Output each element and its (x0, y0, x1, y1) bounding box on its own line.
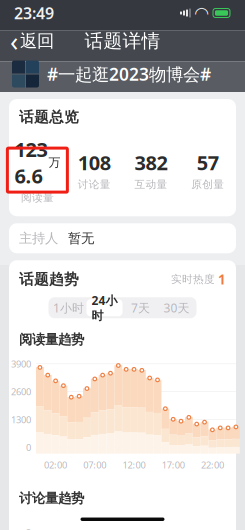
button[interactable]: 30天 (158, 299, 194, 316)
button[interactable]: ‹ (0, 26, 64, 56)
staticText: 原创量 (191, 178, 224, 191)
staticText: 23:49 (14, 2, 54, 24)
staticText: 7天 (131, 300, 150, 316)
staticText: 实时热度 (171, 273, 215, 286)
staticText: 22:00 (201, 459, 224, 471)
staticText: 382 (134, 149, 167, 176)
staticText: 1236.6 (14, 136, 47, 189)
staticText: 返回 (20, 30, 54, 52)
staticText: ◠ (195, 3, 208, 23)
staticText: 暂无 (68, 230, 94, 246)
staticText: 互动量 (134, 178, 167, 191)
staticText: 07:00 (83, 459, 106, 471)
button[interactable]: 7天 (122, 299, 158, 316)
staticText: 1300 (11, 413, 31, 426)
staticText: 主持人 (19, 230, 58, 246)
staticText: ‹ (10, 23, 18, 59)
button[interactable]: 1小时 (50, 299, 86, 316)
staticText: 讨论量趋势 (19, 490, 84, 506)
staticText: 话题趋势 (19, 270, 79, 288)
staticText: 0 (26, 441, 31, 454)
staticText: #一起逛2023物博会# (47, 62, 211, 85)
staticText: 12:00 (122, 459, 145, 471)
staticText: 02:00 (44, 459, 67, 471)
staticText: 57 (197, 149, 219, 176)
staticText: 1小时 (53, 300, 84, 316)
staticText: 3 (26, 526, 31, 530)
staticText: 万 (48, 155, 60, 170)
staticText: 1 (218, 270, 226, 288)
staticText: 话题详情 (84, 29, 160, 52)
staticText: 2600 (11, 385, 31, 398)
staticText: 17:00 (162, 459, 185, 471)
button[interactable]: 24小时 (86, 299, 122, 316)
staticText: 阅读量趋势 (19, 331, 84, 348)
staticText: 话题总览 (19, 108, 79, 126)
staticText: 24小时 (91, 292, 117, 323)
staticText: 108 (78, 149, 111, 176)
staticText: 3900 (11, 358, 31, 370)
staticText: 讨论量 (78, 178, 111, 191)
staticText: 阅读量 (21, 191, 54, 204)
staticText: 30天 (163, 300, 189, 316)
